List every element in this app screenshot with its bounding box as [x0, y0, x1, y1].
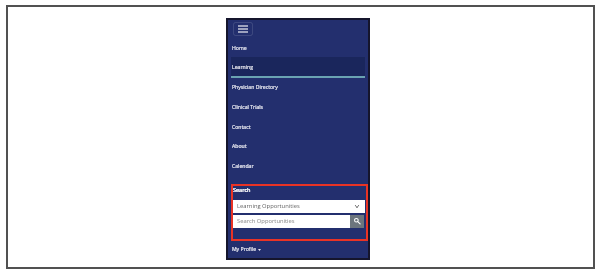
button[interactable]: Physician Directory: [228, 77, 367, 97]
button[interactable]: Contact: [228, 117, 367, 137]
staticText: Contact: [232, 123, 251, 130]
button[interactable]: Learning: [228, 57, 367, 77]
staticText: Physician Directory: [232, 83, 278, 90]
button[interactable]: Clinical Trials: [228, 97, 367, 117]
staticText: Home: [232, 44, 247, 51]
button[interactable]: Search: [350, 215, 364, 228]
staticText: Calendar: [232, 162, 254, 169]
staticText: Clinical Trials: [232, 103, 264, 110]
staticText: My Profile: [232, 245, 257, 252]
staticText: Search Opportunities: [237, 217, 295, 225]
button[interactable]: My Profile: [228, 242, 367, 259]
button[interactable]: Menu: [233, 22, 253, 36]
button[interactable]: Search Opportunities: [233, 215, 350, 228]
staticText: Learning: [232, 63, 253, 70]
button[interactable]: Learning Opportunities: [233, 200, 365, 213]
button[interactable]: Calendar: [228, 156, 367, 176]
staticText: About: [232, 142, 247, 149]
staticText: Search: [233, 186, 251, 193]
button[interactable]: About: [228, 136, 367, 156]
staticText: Learning Opportunities: [237, 202, 300, 210]
button[interactable]: Home: [228, 38, 367, 58]
